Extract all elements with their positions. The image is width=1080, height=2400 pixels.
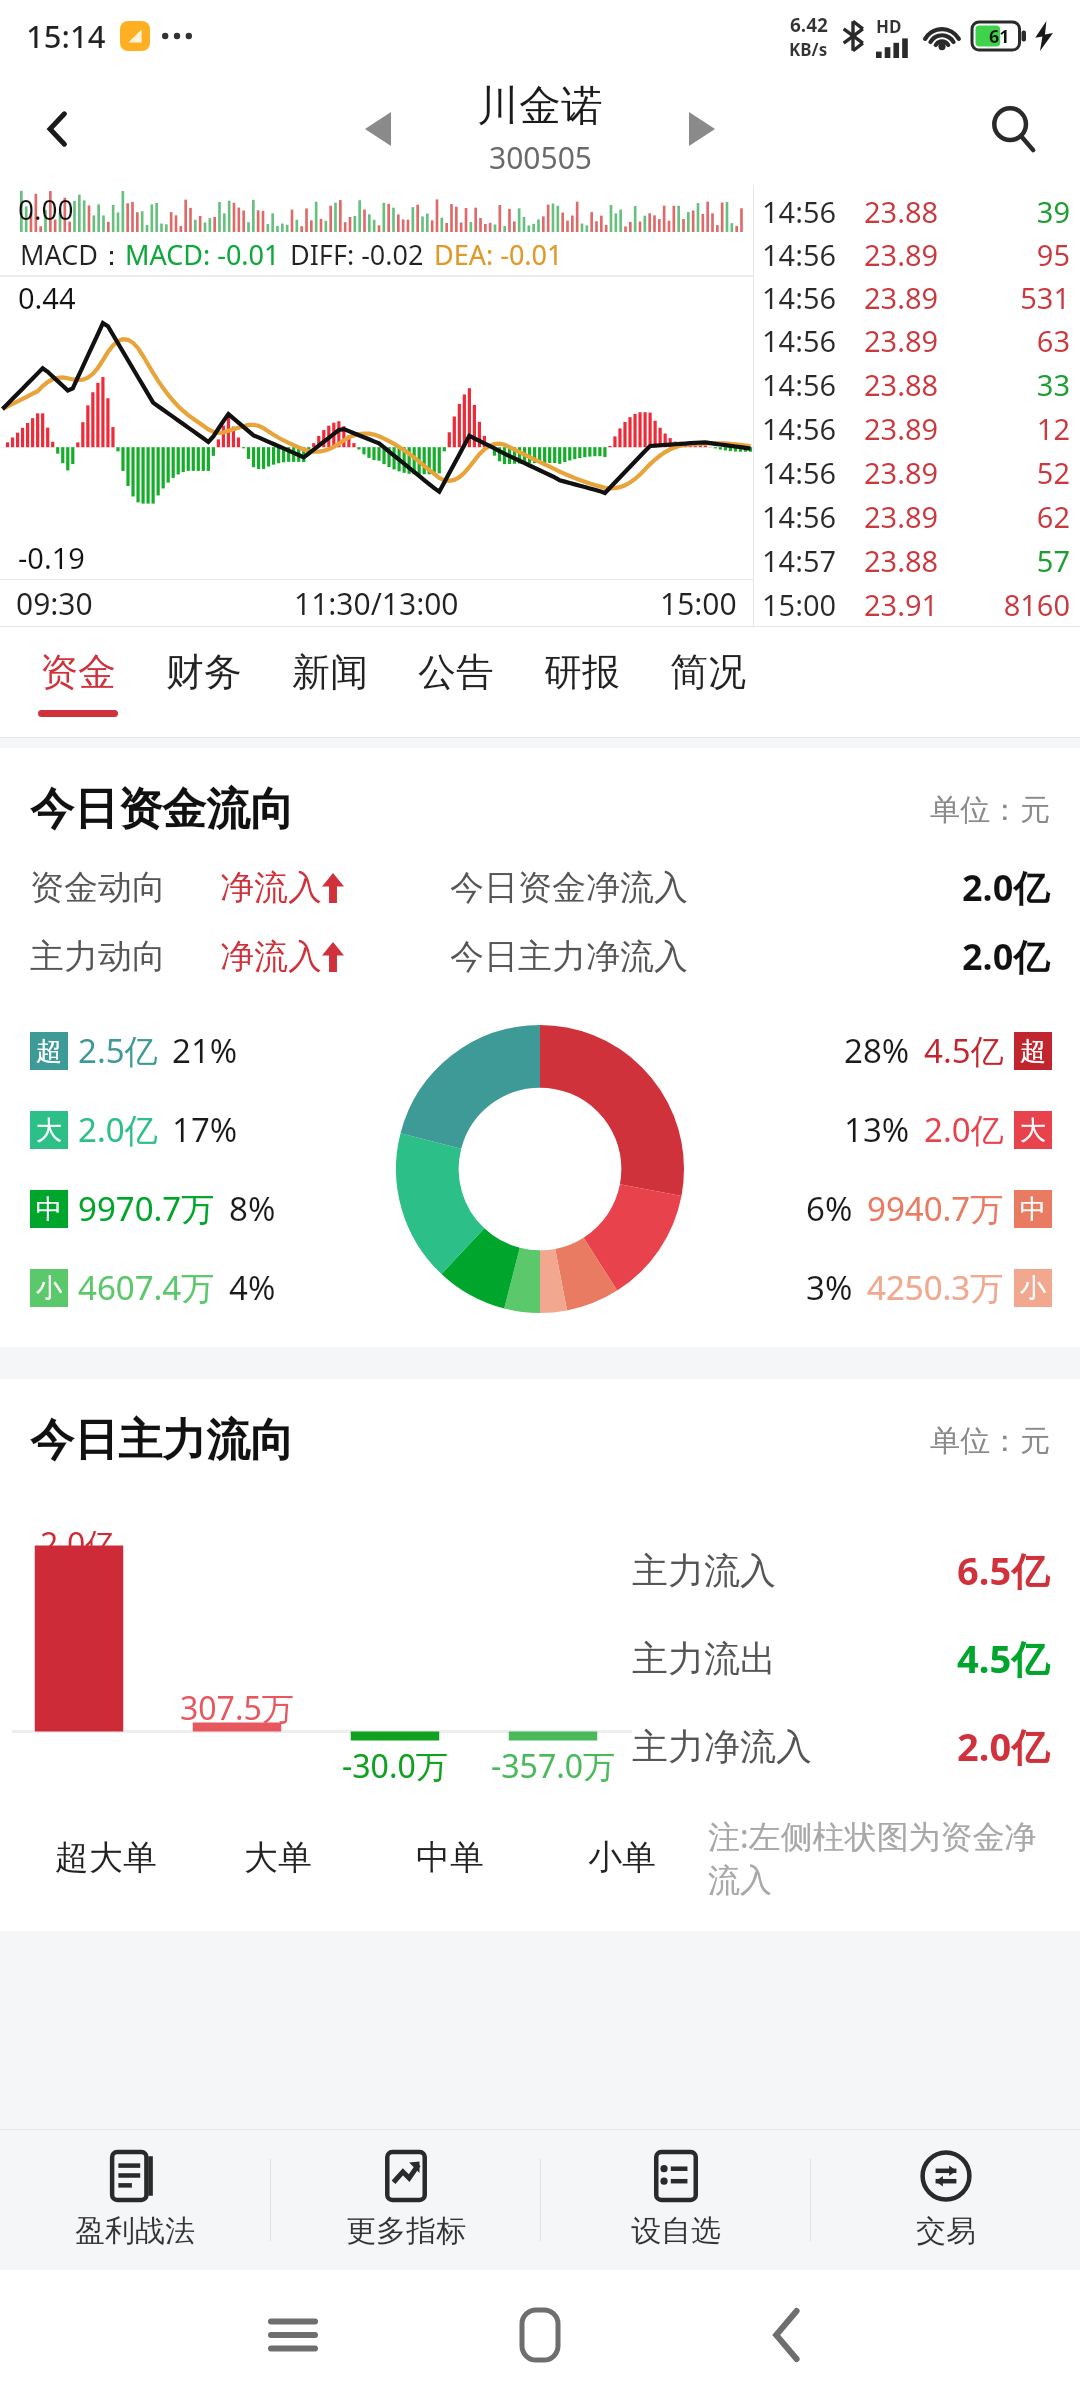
staticText: 09:30 (16, 583, 93, 624)
staticText: 4607.4万 (78, 1265, 215, 1310)
staticText: 小 (1020, 1272, 1046, 1305)
staticText: 4% (229, 1265, 276, 1310)
staticText: 净流入 (220, 935, 322, 978)
staticText: 62 (972, 497, 1070, 536)
staticText: 95 (972, 235, 1070, 274)
staticText: 23.89 (864, 321, 972, 360)
staticText: 17% (172, 1107, 238, 1152)
button[interactable]: 简况 (656, 626, 760, 738)
staticText: 0.00 (18, 190, 74, 228)
staticText: 2.0亿 (40, 1522, 118, 1566)
staticText: 大单 (244, 1836, 312, 1879)
staticText: 9970.7万 (78, 1186, 215, 1231)
staticText: 33 (972, 365, 1070, 404)
staticText: 超大单 (55, 1836, 157, 1879)
staticText: 57 (972, 541, 1070, 580)
staticText: 14:56 (762, 497, 864, 536)
staticText: 3% (806, 1265, 853, 1310)
staticText: 307.5万 (180, 1686, 294, 1730)
staticText: 6.5亿 (957, 1544, 1050, 1596)
button[interactable]: Next stock (665, 92, 739, 166)
staticText: 21% (172, 1028, 238, 1073)
staticText: 大 (1020, 1114, 1046, 1147)
staticText: HD (876, 15, 902, 38)
staticText: 资金 (40, 648, 116, 696)
staticText: 39 (972, 192, 1070, 231)
button[interactable]: Back (18, 89, 98, 169)
staticText: 设自选 (631, 2212, 721, 2250)
staticText: 52 (972, 453, 1070, 492)
staticText: -357.0万 (491, 1744, 616, 1788)
staticText: 盈利战法 (75, 2212, 195, 2250)
staticText: 14:56 (762, 365, 864, 404)
staticText: 300505 (489, 137, 592, 178)
staticText: 公告 (418, 648, 494, 696)
button[interactable]: 新闻 (278, 626, 382, 738)
staticText: 4.5亿 (957, 1632, 1050, 1684)
button[interactable]: 更多指标 (271, 2130, 540, 2270)
button[interactable]: Back (663, 2285, 910, 2385)
staticText: 23.89 (864, 453, 972, 492)
staticText: 单位：元 (930, 791, 1050, 829)
staticText: 更多指标 (346, 2212, 466, 2250)
button[interactable]: Recents (170, 2285, 416, 2385)
staticText: 今日主力流向 (30, 1413, 294, 1468)
staticText: 财务 (166, 648, 242, 696)
button[interactable]: 设自选 (541, 2130, 810, 2270)
staticText: 2.0亿 (962, 863, 1050, 912)
staticText: 资金动向 (30, 866, 220, 909)
staticText: 23.91 (864, 585, 972, 624)
staticText: 中单 (416, 1836, 484, 1879)
staticText: -0.19 (18, 538, 85, 577)
staticText: 交易 (916, 2212, 976, 2250)
staticText: 小 (36, 1272, 62, 1305)
staticText: 中 (36, 1193, 62, 1226)
staticText: 4.5亿 (924, 1028, 1004, 1073)
button[interactable]: 财务 (152, 626, 256, 738)
staticText: 12 (972, 409, 1070, 448)
staticText: 今日主力净流入 (450, 935, 688, 978)
staticText: 15:00 (762, 585, 864, 624)
staticText: 23.89 (864, 278, 972, 317)
button[interactable]: 盈利战法 (0, 2130, 270, 2270)
staticText: 大 (36, 1114, 62, 1147)
button[interactable]: 研报 (530, 626, 634, 738)
staticText: 14:56 (762, 321, 864, 360)
staticText: 主力净流入 (632, 1724, 812, 1769)
staticText: 2.0亿 (957, 1720, 1050, 1772)
staticText: 小单 (588, 1836, 656, 1879)
staticText: 2.5亿 (78, 1028, 158, 1073)
staticText: 14:56 (762, 453, 864, 492)
staticText: 14:57 (762, 541, 864, 580)
button[interactable]: Previous stock (341, 92, 415, 166)
staticText: MACD: -0.01 (125, 236, 280, 273)
button[interactable]: Search (970, 86, 1056, 172)
staticText: 6.42 (790, 12, 828, 38)
staticText: 23.88 (864, 192, 972, 231)
button[interactable]: 交易 (811, 2130, 1080, 2270)
button[interactable]: 资金 (26, 626, 130, 738)
staticText: KB/s (789, 38, 828, 61)
staticText: 6% (806, 1186, 853, 1231)
staticText: 23.89 (864, 235, 972, 274)
staticText: 今日资金流向 (30, 782, 294, 837)
staticText: 研报 (544, 648, 620, 696)
staticText: 主力动向 (30, 935, 220, 978)
staticText: DEA: -0.01 (434, 236, 563, 273)
button[interactable]: 公告 (404, 626, 508, 738)
button[interactable]: Home (416, 2285, 663, 2385)
staticText: 2.0亿 (924, 1107, 1004, 1152)
staticText: 23.88 (864, 541, 972, 580)
staticText: 14:56 (762, 192, 864, 231)
staticText: 简况 (670, 648, 746, 696)
staticText: 川金诺 (477, 80, 603, 133)
staticText: 0.44 (18, 278, 76, 317)
staticText: 主力流入 (632, 1548, 776, 1593)
staticText: 8% (229, 1186, 276, 1231)
staticText: 4250.3万 (867, 1265, 1004, 1310)
staticText: 单位：元 (930, 1422, 1050, 1460)
staticText: 14:56 (762, 409, 864, 448)
staticText: 23.88 (864, 365, 972, 404)
staticText: 新闻 (292, 648, 368, 696)
staticText: 2.0亿 (962, 932, 1050, 981)
